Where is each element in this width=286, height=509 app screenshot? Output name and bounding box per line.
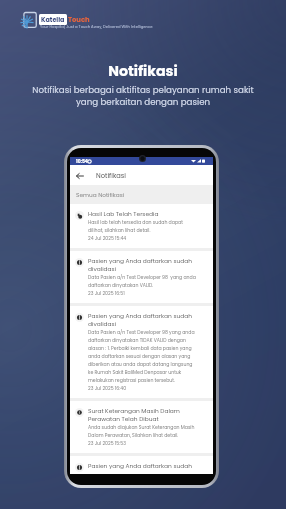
staticText: Hasil Lab Telah Tersedia	[88, 210, 159, 218]
staticText: Pasien yang Anda daftarkan sudah divalid…	[88, 312, 196, 328]
staticText: Hasil lab telah tersedia dan sudah dapat…	[88, 219, 196, 234]
button[interactable]: Pasien yang Anda daftarkan sudah divalid…	[70, 251, 213, 303]
staticText: Pasien yang Anda daftarkan sudah	[88, 462, 192, 470]
button[interactable]: Back	[73, 169, 86, 182]
button[interactable]: Pasien yang Anda daftarkan sudah divalid…	[70, 306, 213, 398]
staticText: Notifikasi	[96, 171, 127, 180]
staticText: 24 Jul 2025 15:44	[88, 235, 127, 242]
staticText: Pasien yang Anda daftarkan sudah divalid…	[88, 257, 196, 273]
staticText: Notifikasi berbagai aktifitas pelayanan …	[0, 84, 286, 108]
staticText: 23 Jul 2025 15:53	[88, 440, 126, 447]
staticText: Surat Keterangan Masih Dalam Perawatan T…	[88, 407, 196, 423]
button[interactable]: Hasil Lab Telah Tersedia	[70, 204, 213, 248]
staticText: Semua Notifikasi	[76, 191, 125, 199]
staticText: Your Hospital, Just a Touch Away, Delive…	[40, 24, 153, 29]
staticText: Data Pasien a/n Test Developer 98 yang a…	[88, 329, 196, 384]
button[interactable]: Surat Keterangan Masih Dalam Perawatan T…	[70, 401, 213, 453]
button[interactable]: Pasien yang Anda daftarkan sudah	[70, 456, 213, 474]
staticText: 10:54	[76, 158, 88, 164]
staticText: Anda sudah diajukan Surat Keterangan Mas…	[88, 424, 196, 439]
staticText: 23 Jul 2025 16:40	[88, 385, 127, 392]
staticText: 23 Jul 2025 16:51	[88, 290, 125, 297]
staticText: Data Pasien a/n Test Developer 98 yang a…	[88, 274, 196, 289]
staticText: Notifikasi	[0, 61, 286, 81]
staticText: Touch	[68, 15, 90, 25]
staticText: Katelia	[41, 15, 65, 24]
